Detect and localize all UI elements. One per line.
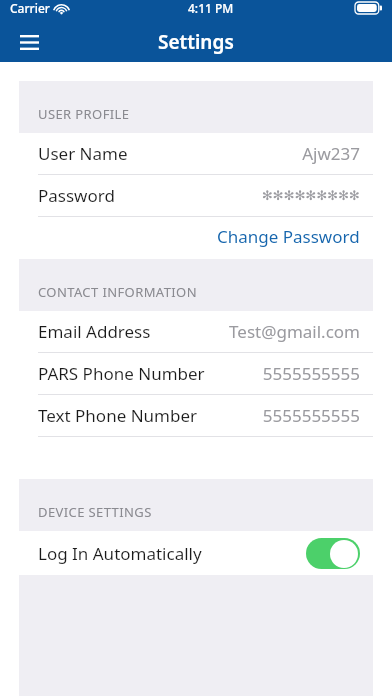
staticText: Email Address [38,320,151,343]
button[interactable]: Log In Automatically toggle [306,538,360,569]
staticText: Password [38,184,115,207]
button[interactable]: User Name [19,133,373,175]
staticText: Test@gmail.com [229,320,360,343]
button[interactable]: Password [19,175,373,217]
staticText: PARS Phone Number [38,362,205,385]
button[interactable]: Change Password [19,217,373,255]
staticText: Change Password [217,225,360,248]
staticText: Carrier [10,0,50,16]
staticText: Ajw237 [302,142,360,165]
button[interactable]: Log In Automatically [19,531,373,575]
staticText: Log In Automatically [38,542,202,565]
staticText: 5555555555 [262,404,360,427]
button[interactable]: Menu [10,23,48,61]
staticText: CONTACT INFORMATION [38,283,197,301]
staticText: Text Phone Number [38,404,198,427]
staticText: 4:11 PM [188,0,234,16]
staticText: 5555555555 [262,362,360,385]
staticText: USER PROFILE [38,105,130,123]
staticText: User Name [38,142,128,165]
staticText: Settings [158,29,234,55]
button[interactable]: Text Phone Number [19,395,373,437]
button[interactable]: Email Address [19,311,373,353]
button[interactable]: PARS Phone Number [19,353,373,395]
staticText: DEVICE SETTINGS [38,503,152,521]
staticText: ✻✻✻✻✻✻✻✻✻ [261,188,360,203]
